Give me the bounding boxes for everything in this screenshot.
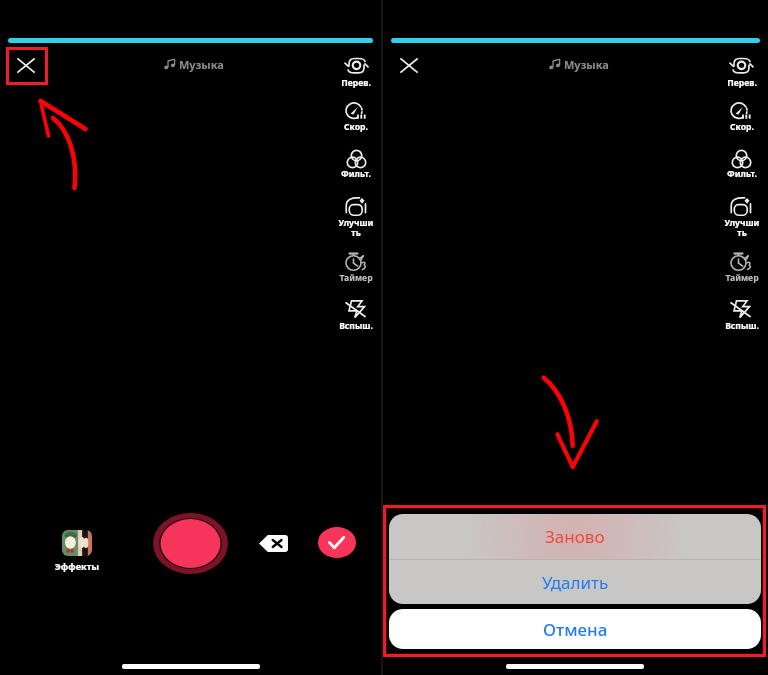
button[interactable]: Delete last clip: [259, 535, 288, 552]
staticText: Музыка: [564, 57, 609, 72]
button[interactable]: Удалить: [389, 560, 761, 604]
staticText: Скор.: [334, 121, 378, 133]
staticText: Эффекты: [50, 560, 104, 573]
staticText: Вспыш.: [334, 320, 378, 332]
staticText: Улучши ть: [720, 217, 764, 238]
button[interactable]: Музыка: [549, 57, 609, 72]
staticText: Фильт.: [720, 168, 764, 180]
button[interactable]: Скор.: [720, 99, 764, 134]
staticText: Таймер: [334, 272, 378, 284]
button[interactable]: Вспыш.: [720, 296, 764, 332]
button[interactable]: Close: [391, 48, 427, 82]
staticText: Удалить: [542, 571, 609, 594]
button[interactable]: Confirm: [318, 527, 356, 558]
staticText: Перев.: [334, 77, 378, 89]
staticText: Вспыш.: [720, 320, 764, 332]
button[interactable]: Улучшить: [720, 194, 764, 230]
button[interactable]: Вспыш.: [334, 296, 378, 332]
staticText: Перев.: [720, 77, 764, 89]
staticText: Фильт.: [334, 168, 378, 180]
button[interactable]: Заново: [389, 514, 761, 559]
button[interactable]: Таймер: [334, 249, 378, 284]
button[interactable]: Фильт.: [720, 147, 764, 181]
staticText: Скор.: [720, 121, 764, 133]
staticText: Отмена: [543, 618, 608, 641]
staticText: Таймер: [720, 272, 764, 284]
button[interactable]: Close: [8, 48, 44, 82]
button[interactable]: Фильт.: [334, 147, 378, 181]
button[interactable]: Перев.: [334, 53, 378, 90]
button[interactable]: Перев.: [720, 53, 764, 90]
button[interactable]: Улучшить: [334, 194, 378, 230]
button[interactable]: [50, 527, 104, 573]
staticText: Улучши ть: [334, 217, 378, 238]
staticText: Музыка: [179, 57, 224, 72]
button[interactable]: Скор.: [334, 99, 378, 134]
button[interactable]: Таймер: [720, 249, 764, 284]
button[interactable]: Отмена: [389, 609, 761, 649]
button[interactable]: Музыка: [164, 57, 224, 72]
staticText: Заново: [545, 525, 605, 548]
button[interactable]: Record: [153, 513, 228, 574]
